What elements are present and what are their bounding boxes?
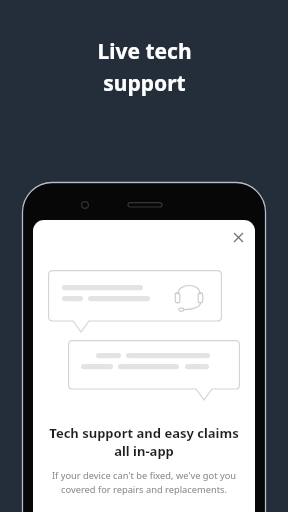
staticText: If your device can't be fixed, we've got…: [39, 469, 249, 495]
button[interactable]: Close: [223, 222, 253, 252]
staticText: Tech support and easy claims all in-app: [39, 424, 249, 460]
staticText: Live tech: [97, 37, 192, 66]
staticText: support: [103, 69, 186, 98]
